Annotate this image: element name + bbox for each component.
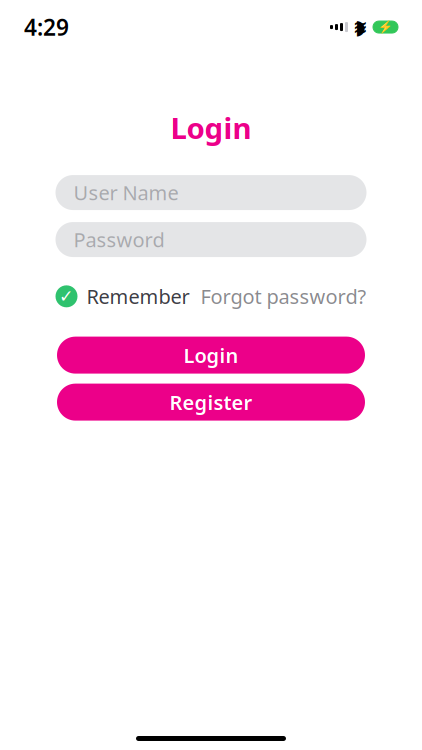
staticText: Password <box>73 226 164 253</box>
staticText: Forgot password? <box>200 283 366 310</box>
button[interactable]: Register <box>57 384 365 421</box>
staticText: Register <box>169 389 252 415</box>
staticText: ✓ <box>59 286 74 306</box>
button[interactable]: ✓ <box>55 283 189 310</box>
button[interactable]: Forgot password? <box>200 283 366 310</box>
staticText: Login <box>183 342 238 368</box>
staticText: 4:29 <box>24 12 69 42</box>
button[interactable]: Login <box>57 337 365 374</box>
staticText: ≋ <box>353 17 368 37</box>
staticText: ⚡ <box>378 20 393 34</box>
staticText: ◗ <box>355 16 366 38</box>
staticText: User Name <box>73 179 178 206</box>
staticText: Login <box>170 108 251 147</box>
staticText: Remember <box>86 283 189 310</box>
